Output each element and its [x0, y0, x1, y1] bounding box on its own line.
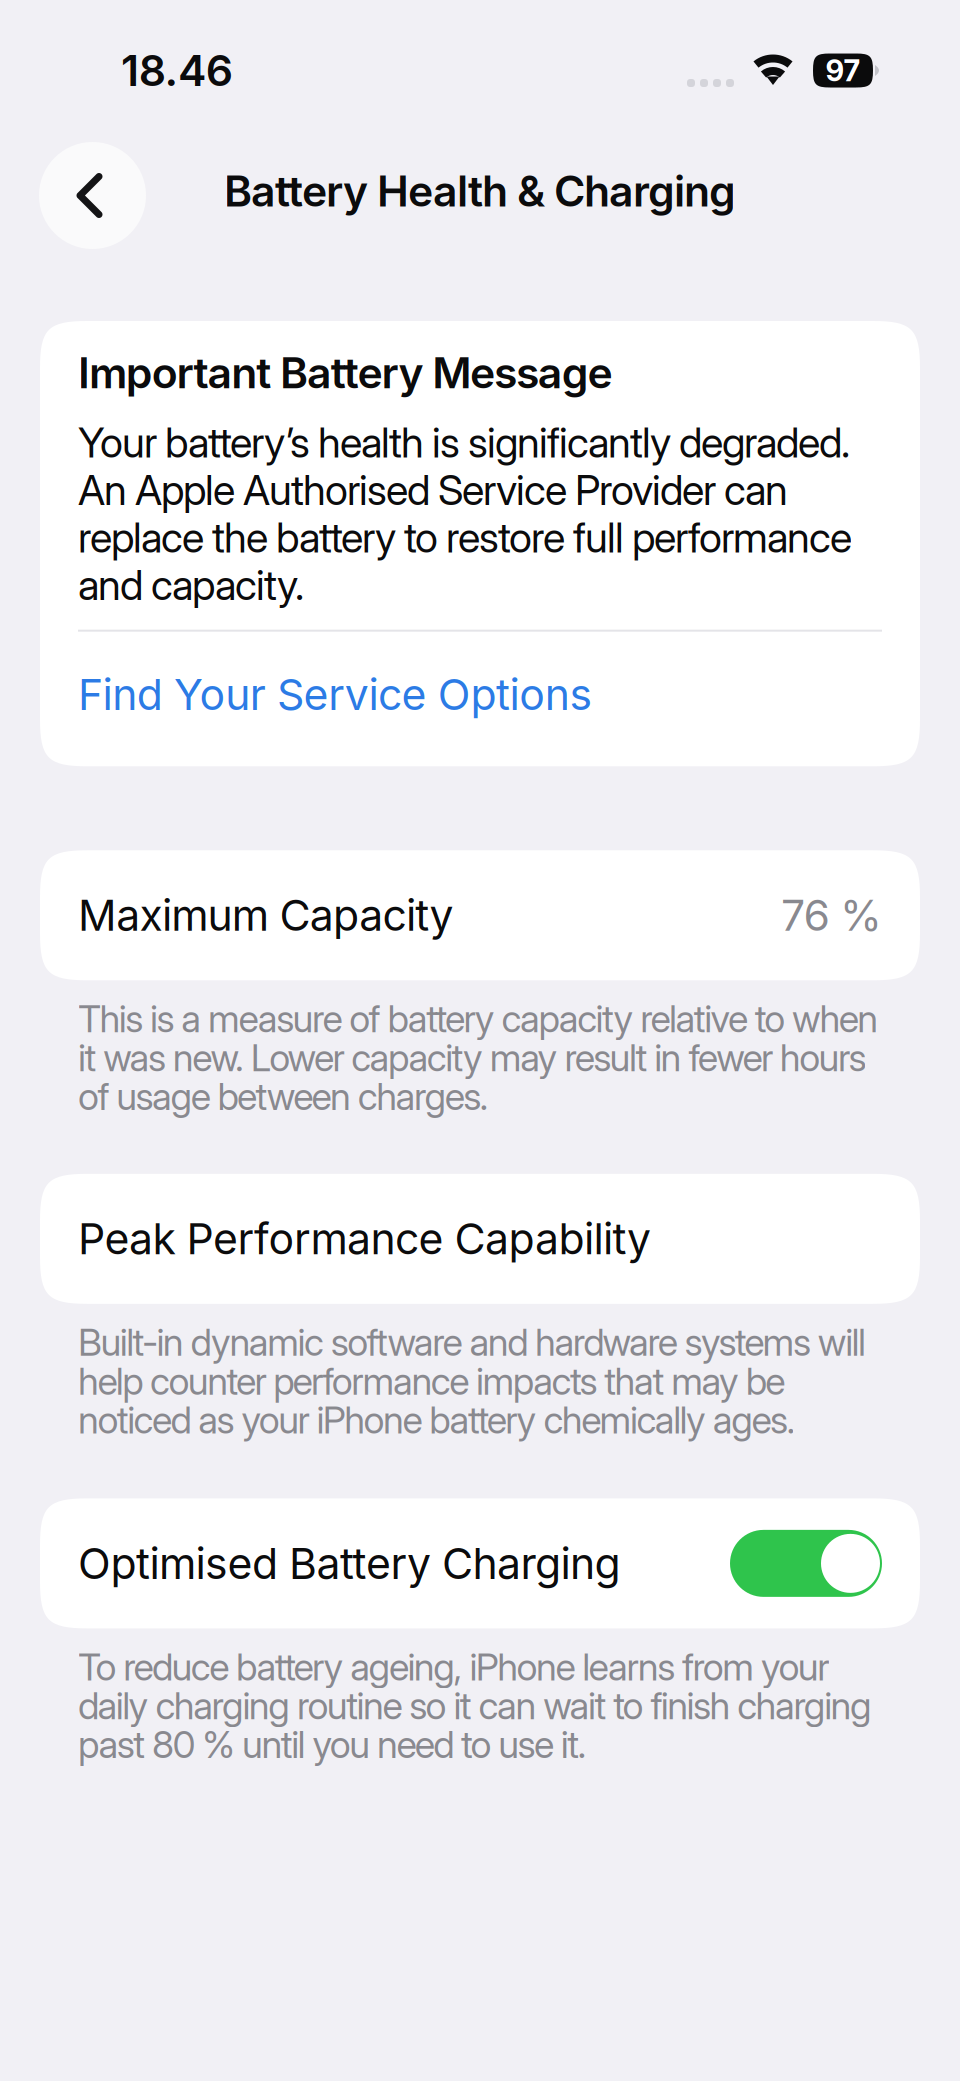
- staticText: 97: [825, 53, 860, 88]
- button[interactable]: Peak Performance Capability: [0, 1174, 960, 1304]
- staticText: Your battery’s health is significantly d…: [78, 419, 852, 609]
- button[interactable]: Back: [39, 142, 146, 249]
- button[interactable]: Find Your Service Options: [78, 669, 882, 720]
- staticText: Battery Health & Charging: [224, 165, 736, 217]
- staticText: Maximum Capacity: [78, 889, 453, 941]
- staticText: Built-in dynamic software and hardware s…: [78, 1323, 866, 1439]
- staticText: Peak Performance Capability: [78, 1213, 651, 1265]
- staticText: Optimised Battery Charging: [78, 1538, 620, 1589]
- staticText: 18.46: [121, 45, 233, 96]
- staticText: To reduce battery ageing, iPhone learns …: [78, 1647, 872, 1764]
- staticText: Important Battery Message: [78, 347, 613, 399]
- staticText: This is a measure of battery capacity re…: [78, 999, 878, 1116]
- button[interactable]: Optimised Battery Charging: [730, 1530, 882, 1597]
- staticText: Find Your Service Options: [78, 669, 592, 720]
- staticText: 76 %: [781, 889, 882, 941]
